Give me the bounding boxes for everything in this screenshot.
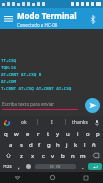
button[interactable]: i: [73, 128, 83, 139]
staticText: t: [47, 130, 50, 138]
button[interactable]: m: [78, 150, 88, 161]
staticText: l: [84, 141, 86, 149]
button[interactable]: Backspace: [88, 150, 103, 161]
staticText: w: [14, 130, 19, 138]
staticText: o: [86, 130, 90, 138]
button[interactable]: Comma: [14, 161, 23, 172]
button[interactable]: Enter: [88, 163, 102, 170]
button[interactable]: e: [22, 128, 33, 139]
button[interactable]: u: [63, 128, 73, 139]
staticText: h: [56, 141, 60, 149]
staticText: I: [51, 119, 53, 126]
staticText: ES · EN: [50, 165, 61, 169]
staticText: p: [96, 130, 100, 138]
button[interactable]: Escriba texto para enviar: [2, 101, 78, 110]
button[interactable]: v: [48, 150, 58, 161]
button[interactable]: c: [38, 150, 48, 161]
staticText: f: [38, 141, 41, 149]
button[interactable]: b: [58, 150, 68, 161]
button[interactable]: n: [68, 150, 78, 161]
staticText: AT+CRNT AT+CSQ R: [1, 72, 42, 78]
staticText: r: [37, 130, 40, 138]
staticText: ,: [18, 163, 20, 171]
staticText: TQH:56: [1, 65, 17, 71]
staticText: TT+CSQ: [1, 58, 17, 64]
button[interactable]: t: [43, 128, 53, 139]
staticText: Modo Terminal: [17, 10, 77, 21]
button[interactable]: thanks: [66, 116, 93, 128]
button[interactable]: ?123: [0, 161, 14, 172]
button[interactable]: r: [33, 128, 43, 139]
staticText: v: [51, 152, 55, 160]
staticText: Escriba texto para enviar: [2, 101, 55, 107]
staticText: c: [42, 152, 45, 160]
button[interactable]: l: [80, 139, 89, 150]
button[interactable]: Space: [35, 164, 76, 169]
staticText: n: [71, 152, 75, 160]
button[interactable]: p: [93, 128, 103, 139]
button[interactable]: a: [6, 139, 16, 150]
button[interactable]: g: [44, 139, 53, 150]
button[interactable]: Back: [0, 172, 35, 183]
button[interactable]: Send: [85, 98, 100, 113]
button[interactable]: d: [26, 139, 35, 150]
button[interactable]: Bluetooth: [87, 13, 99, 25]
button[interactable]: I: [38, 116, 65, 128]
staticText: x: [31, 152, 35, 160]
staticText: AT+COM: [1, 79, 17, 85]
button[interactable]: j: [62, 139, 71, 150]
button[interactable]: ok: [10, 116, 37, 128]
staticText: T+CRNT AT+CSQ AT+CRNT AT+CSQ: [1, 86, 72, 92]
staticText: ñ: [92, 141, 96, 149]
staticText: b: [61, 152, 65, 160]
staticText: i: [77, 130, 79, 138]
button[interactable]: Home: [35, 172, 69, 183]
button[interactable]: q: [0, 128, 11, 139]
button[interactable]: y: [53, 128, 63, 139]
button[interactable]: Voice input: [93, 119, 100, 126]
staticText: j: [66, 141, 68, 149]
staticText: a: [9, 141, 13, 149]
staticText: thanks: [72, 119, 88, 126]
staticText: m: [80, 152, 86, 160]
staticText: e: [26, 130, 30, 138]
staticText: k: [74, 141, 78, 149]
staticText: u: [66, 130, 70, 138]
staticText: Conectado a HC-06: [17, 22, 58, 28]
button[interactable]: Period: [78, 161, 87, 172]
staticText: ?123: [3, 164, 12, 169]
staticText: y: [56, 130, 60, 138]
button[interactable]: o: [83, 128, 93, 139]
button[interactable]: f: [35, 139, 44, 150]
button[interactable]: s: [16, 139, 26, 150]
staticText: q: [4, 130, 8, 138]
staticText: d: [29, 141, 33, 149]
button[interactable]: h: [53, 139, 62, 150]
button[interactable]: Shift: [0, 150, 16, 161]
staticText: .: [82, 163, 84, 171]
button[interactable]: w: [11, 128, 22, 139]
staticText: ok: [21, 119, 27, 126]
staticText: z: [20, 152, 23, 160]
staticText: g: [47, 141, 51, 149]
button[interactable]: Recent apps: [69, 172, 103, 183]
button[interactable]: k: [71, 139, 80, 150]
button[interactable]: Google: [3, 119, 10, 126]
button[interactable]: z: [16, 150, 27, 161]
button[interactable]: Open navigation menu: [3, 13, 14, 24]
staticText: s: [20, 141, 23, 149]
button[interactable]: x: [27, 150, 38, 161]
button[interactable]: Emoji: [23, 161, 33, 172]
button[interactable]: ñ: [89, 139, 98, 150]
